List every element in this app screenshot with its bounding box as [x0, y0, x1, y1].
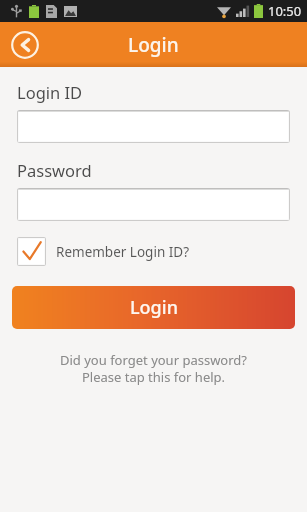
- button[interactable]: [17, 188, 290, 221]
- button[interactable]: Back: [8, 28, 42, 62]
- staticText: 10:50: [268, 2, 302, 20]
- staticText: Login: [128, 32, 179, 58]
- staticText: Remember Login ID?: [56, 243, 190, 261]
- staticText: Did you forget your password? Please tap…: [60, 351, 247, 386]
- staticText: Login ID: [17, 81, 83, 103]
- button[interactable]: Remember Login ID?: [17, 237, 190, 266]
- staticText: Login: [130, 295, 178, 320]
- button[interactable]: Did you forget your password? Please tap…: [0, 349, 307, 388]
- staticText: Password: [17, 159, 92, 181]
- button[interactable]: Login: [12, 286, 295, 329]
- button[interactable]: [17, 110, 290, 143]
